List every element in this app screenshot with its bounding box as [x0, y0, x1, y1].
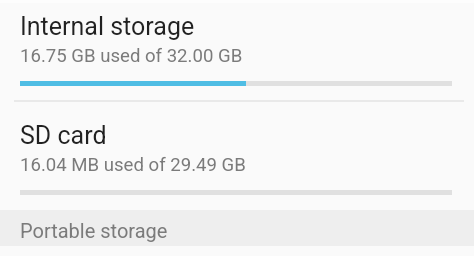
button[interactable]: Portable storage — [0, 210, 474, 246]
staticText: Internal storage — [20, 12, 195, 41]
staticText: Portable storage — [20, 219, 168, 242]
staticText: SD card — [20, 121, 107, 150]
staticText: 16.04 MB used of 29.49 GB — [20, 154, 246, 176]
button[interactable]: Internal storage — [0, 4, 474, 100]
button[interactable]: SD card — [0, 113, 474, 209]
staticText: 16.75 GB used of 32.00 GB — [20, 45, 243, 67]
